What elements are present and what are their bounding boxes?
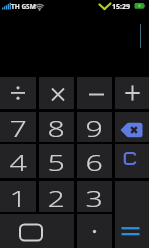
button[interactable]: 6 <box>77 144 112 178</box>
button[interactable]: 8 <box>39 112 74 142</box>
button[interactable] <box>115 181 149 248</box>
staticText: 1 <box>9 183 27 213</box>
staticText: 4 <box>9 147 27 177</box>
button[interactable]: 4 <box>0 144 36 178</box>
button[interactable] <box>39 77 74 109</box>
button[interactable] <box>0 13 149 77</box>
staticText: 9 <box>85 113 103 143</box>
staticText: 2 <box>47 183 65 213</box>
button[interactable] <box>115 77 149 109</box>
staticText: 15:29 <box>112 2 130 12</box>
button[interactable]: 7 <box>0 112 36 142</box>
button[interactable]: 3 <box>77 181 112 212</box>
button[interactable]: 1 <box>0 181 36 212</box>
button[interactable] <box>115 144 149 178</box>
button[interactable]: 2 <box>39 181 74 212</box>
staticText: 8 <box>47 113 65 143</box>
staticText: 3 <box>85 183 103 213</box>
staticText: 7 <box>9 113 27 143</box>
button[interactable] <box>77 77 112 109</box>
button[interactable] <box>77 214 112 248</box>
staticText: TH GSM <box>11 2 36 11</box>
staticText: 5 <box>47 147 65 177</box>
button[interactable]: 9 <box>77 112 112 142</box>
button[interactable]: 5 <box>39 144 74 178</box>
staticText: 6 <box>85 147 103 177</box>
button[interactable] <box>0 77 36 109</box>
button[interactable] <box>115 112 149 142</box>
button[interactable] <box>0 214 74 248</box>
